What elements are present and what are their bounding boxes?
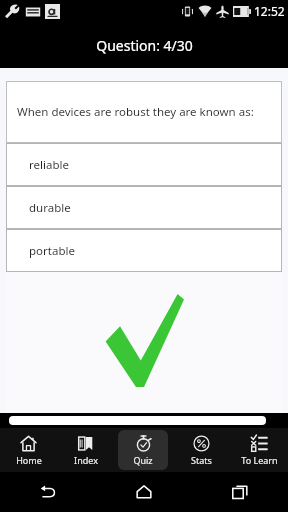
button[interactable]: Home (96, 472, 192, 512)
staticText: Index (74, 454, 98, 466)
staticText: durable (29, 200, 71, 216)
staticText: To Learn (241, 454, 278, 466)
staticText: Home (16, 454, 42, 466)
button[interactable]: reliable (7, 144, 281, 185)
button[interactable]: Recent apps (192, 472, 288, 512)
button[interactable]: Home (4, 430, 53, 470)
staticText: Question: 4/30 (96, 36, 193, 55)
staticText: Stats (191, 454, 212, 466)
staticText: reliable (29, 157, 69, 173)
button[interactable]: Index (61, 430, 110, 470)
staticText: 12:52 (254, 3, 285, 19)
button[interactable]: durable (7, 187, 281, 228)
staticText: portable (29, 243, 75, 259)
button[interactable]: portable (7, 230, 281, 271)
button[interactable]: Back (0, 472, 96, 512)
button[interactable]: Stats (176, 430, 226, 470)
staticText: Quiz (133, 454, 153, 466)
button[interactable]: To Learn (234, 430, 284, 470)
other: Correct answer (104, 292, 184, 387)
button[interactable]: Quiz (118, 430, 168, 470)
staticText: When devices are robust they are known a… (17, 104, 254, 120)
